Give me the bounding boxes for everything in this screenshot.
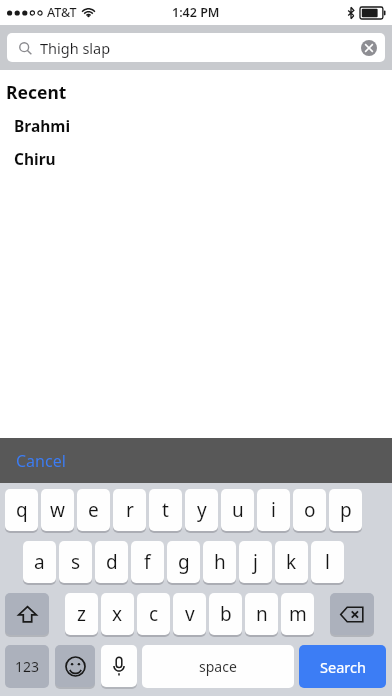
button[interactable]: Emoji bbox=[55, 645, 95, 687]
staticText: z bbox=[77, 601, 86, 627]
staticText: q bbox=[16, 497, 28, 523]
button[interactable]: k bbox=[275, 541, 308, 583]
button[interactable]: n bbox=[245, 593, 278, 635]
staticText: y bbox=[197, 497, 207, 523]
staticText: v bbox=[185, 601, 195, 627]
button[interactable]: Brahmi bbox=[0, 115, 392, 136]
button[interactable]: s bbox=[59, 541, 92, 583]
button[interactable]: y bbox=[185, 489, 218, 531]
button[interactable]: Search bbox=[299, 645, 386, 688]
staticText: i bbox=[271, 497, 276, 523]
button[interactable]: h bbox=[203, 541, 236, 583]
staticText: w bbox=[50, 497, 65, 523]
button[interactable]: w bbox=[41, 489, 74, 531]
button[interactable]: Chiru bbox=[0, 148, 392, 169]
button[interactable]: q bbox=[5, 489, 38, 531]
staticText: u bbox=[232, 497, 244, 523]
staticText: c bbox=[149, 601, 159, 627]
staticText: Recent bbox=[6, 80, 67, 104]
staticText: Cancel bbox=[16, 450, 66, 472]
button[interactable]: o bbox=[293, 489, 326, 531]
staticText: Search bbox=[320, 657, 366, 677]
staticText: space bbox=[199, 657, 237, 676]
staticText: 1:42 PM bbox=[172, 4, 220, 21]
button[interactable]: g bbox=[167, 541, 200, 583]
button[interactable]: space bbox=[142, 645, 294, 688]
staticText: k bbox=[286, 549, 297, 575]
staticText: AT&T bbox=[47, 4, 77, 21]
button[interactable]: Dictate bbox=[101, 645, 137, 687]
staticText: j bbox=[253, 549, 258, 575]
button[interactable]: Cancel bbox=[16, 450, 66, 472]
button[interactable]: c bbox=[137, 593, 170, 635]
button[interactable]: a bbox=[23, 541, 56, 583]
button[interactable]: z bbox=[65, 593, 98, 635]
staticText: p bbox=[340, 497, 352, 523]
button[interactable]: t bbox=[149, 489, 182, 531]
staticText: o bbox=[304, 497, 316, 523]
button[interactable]: Clear text bbox=[361, 40, 377, 56]
button[interactable]: v bbox=[173, 593, 206, 635]
button[interactable]: m bbox=[281, 593, 314, 635]
staticText: r bbox=[126, 497, 134, 523]
staticText: b bbox=[220, 601, 232, 627]
staticText: f bbox=[144, 549, 151, 575]
staticText: t bbox=[162, 497, 169, 523]
button[interactable]: l bbox=[311, 541, 344, 583]
button[interactable]: x bbox=[101, 593, 134, 635]
button[interactable]: r bbox=[113, 489, 146, 531]
staticText: h bbox=[214, 549, 226, 575]
button[interactable]: p bbox=[329, 489, 362, 531]
staticText: n bbox=[256, 601, 268, 627]
staticText: Thigh slap bbox=[40, 38, 111, 58]
staticText: l bbox=[325, 549, 330, 575]
staticText: m bbox=[289, 601, 307, 627]
staticText: 123 bbox=[15, 657, 40, 676]
button[interactable]: b bbox=[209, 593, 242, 635]
button[interactable]: d bbox=[95, 541, 128, 583]
staticText: a bbox=[34, 549, 45, 575]
staticText: s bbox=[71, 549, 81, 575]
button[interactable]: 123 bbox=[5, 645, 49, 688]
button[interactable]: i bbox=[257, 489, 290, 531]
button[interactable]: Thigh slap bbox=[7, 33, 385, 62]
button[interactable]: u bbox=[221, 489, 254, 531]
button[interactable]: Backspace bbox=[330, 593, 374, 635]
button[interactable]: j bbox=[239, 541, 272, 583]
staticText: d bbox=[106, 549, 118, 575]
staticText: Brahmi bbox=[14, 115, 71, 136]
button[interactable]: f bbox=[131, 541, 164, 583]
staticText: e bbox=[88, 497, 99, 523]
staticText: x bbox=[112, 601, 123, 627]
staticText: Chiru bbox=[14, 148, 56, 169]
button[interactable]: e bbox=[77, 489, 110, 531]
button[interactable]: Shift bbox=[5, 593, 49, 635]
staticText: g bbox=[178, 549, 190, 575]
